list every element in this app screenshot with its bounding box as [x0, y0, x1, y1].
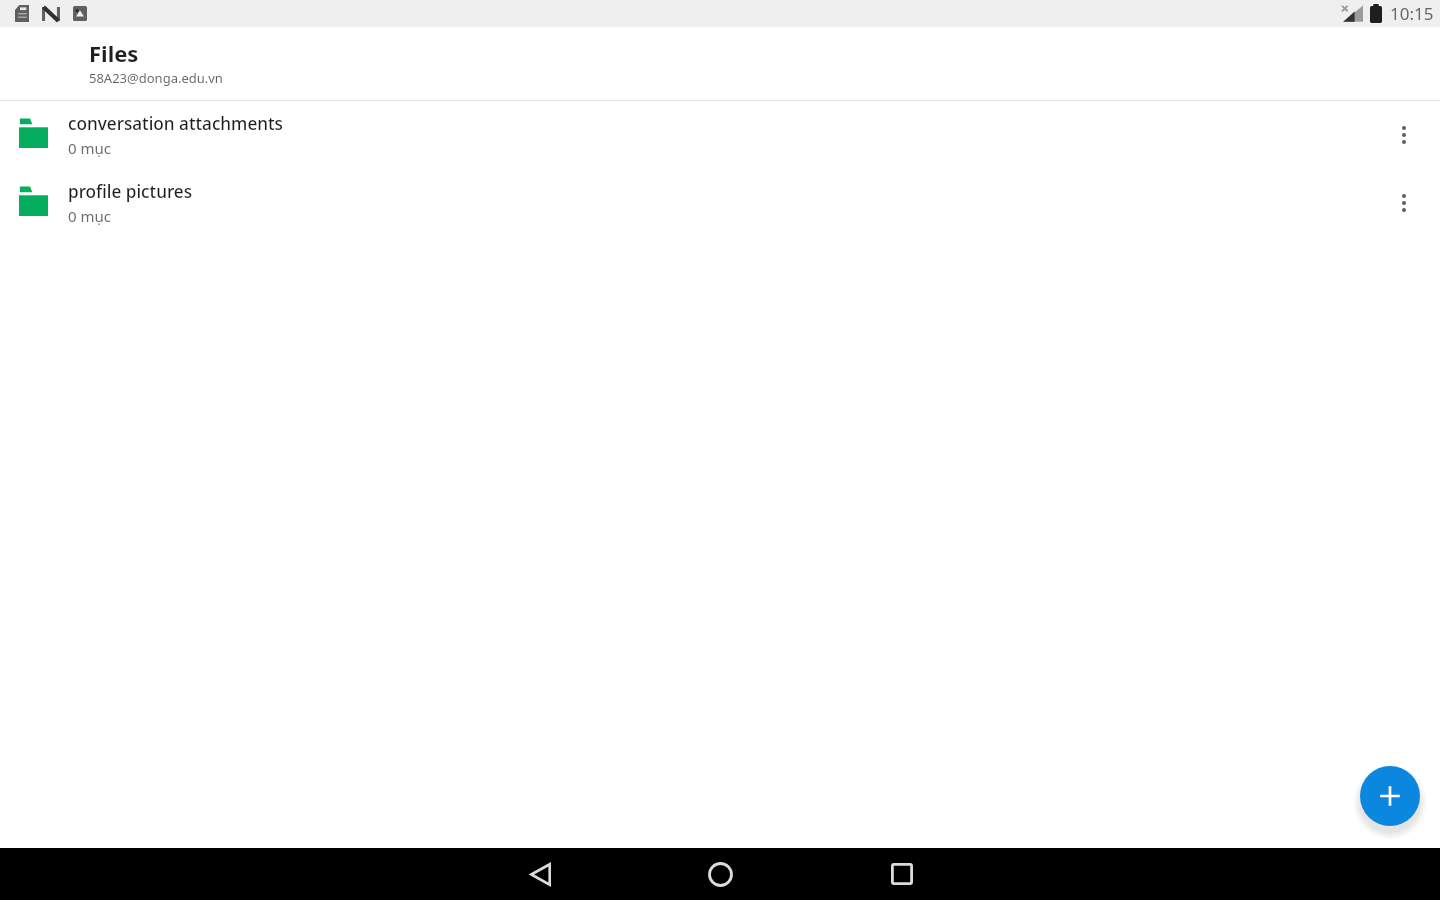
staticText: conversation attachments	[68, 112, 283, 135]
button[interactable]: profile pictures	[0, 169, 1440, 237]
staticText: 10:15	[1390, 2, 1434, 25]
button[interactable]: More options	[1380, 111, 1428, 159]
staticText: profile pictures	[68, 180, 193, 203]
button[interactable]: Back	[514, 848, 566, 900]
staticText: 0 mục	[68, 138, 111, 158]
button[interactable]: More options	[1380, 179, 1428, 227]
button[interactable]: conversation attachments	[0, 101, 1440, 169]
button[interactable]: Home	[694, 848, 746, 900]
button[interactable]: Recent apps	[876, 848, 928, 900]
staticText: 0 mục	[68, 206, 111, 226]
button[interactable]: Add	[1360, 766, 1420, 826]
staticText: Files	[89, 38, 139, 68]
staticText: 58A23@donga.edu.vn	[89, 69, 223, 87]
